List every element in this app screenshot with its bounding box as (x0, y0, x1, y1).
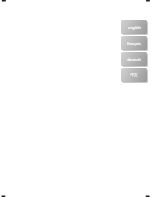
staticText: français (127, 41, 141, 46)
staticText: english (128, 25, 141, 30)
staticText: 中文 (130, 73, 138, 78)
button[interactable]: français (121, 36, 147, 50)
button[interactable]: deutsch (121, 52, 147, 66)
staticText: deutsch (127, 57, 141, 62)
button[interactable]: 中文 (121, 68, 147, 82)
button[interactable]: english (121, 20, 147, 34)
